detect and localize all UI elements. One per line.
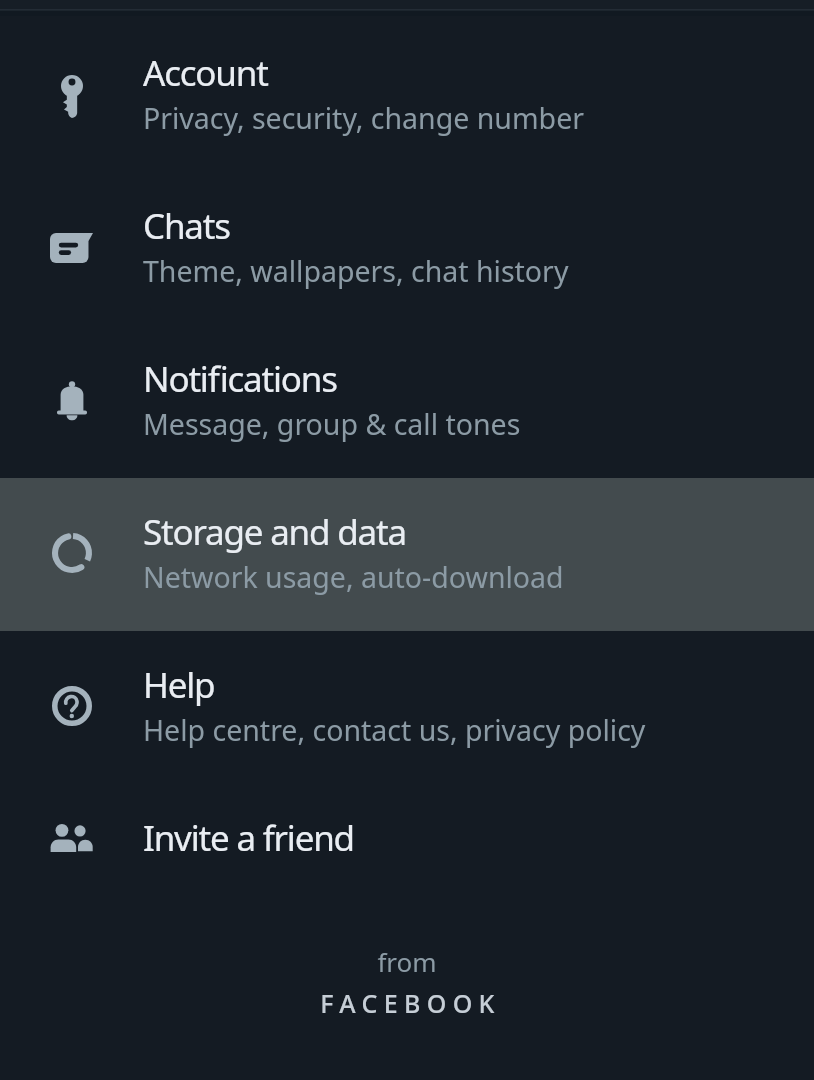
staticText: Chats: [143, 202, 230, 250]
staticText: Help centre, contact us, privacy policy: [143, 711, 646, 750]
other: Invite a friend: [50, 823, 93, 853]
other: Storage and data: [52, 533, 92, 573]
staticText: Network usage, auto-download: [143, 558, 564, 597]
staticText: FACEBOOK: [320, 986, 501, 1020]
other: Account: [61, 75, 83, 118]
staticText: from: [377, 944, 437, 979]
staticText: Storage and data: [143, 508, 406, 556]
button[interactable]: Account: [0, 19, 814, 172]
button[interactable]: Help: [0, 631, 814, 784]
button[interactable]: Chats: [0, 172, 814, 325]
staticText: Account: [143, 49, 268, 97]
other: Notifications: [57, 381, 87, 420]
button[interactable]: Storage and data: [0, 478, 814, 631]
other: Chats: [50, 233, 93, 263]
staticText: Message, group & call tones: [143, 405, 521, 444]
button[interactable]: Notifications: [0, 325, 814, 478]
staticText: Theme, wallpapers, chat history: [143, 252, 569, 291]
staticText: Help: [143, 661, 215, 709]
button[interactable]: Invite a friend: [0, 784, 814, 937]
staticText: Invite a friend: [143, 814, 354, 862]
staticText: Privacy, security, change number: [143, 99, 584, 138]
other: Help: [52, 686, 92, 726]
staticText: Notifications: [143, 355, 337, 403]
